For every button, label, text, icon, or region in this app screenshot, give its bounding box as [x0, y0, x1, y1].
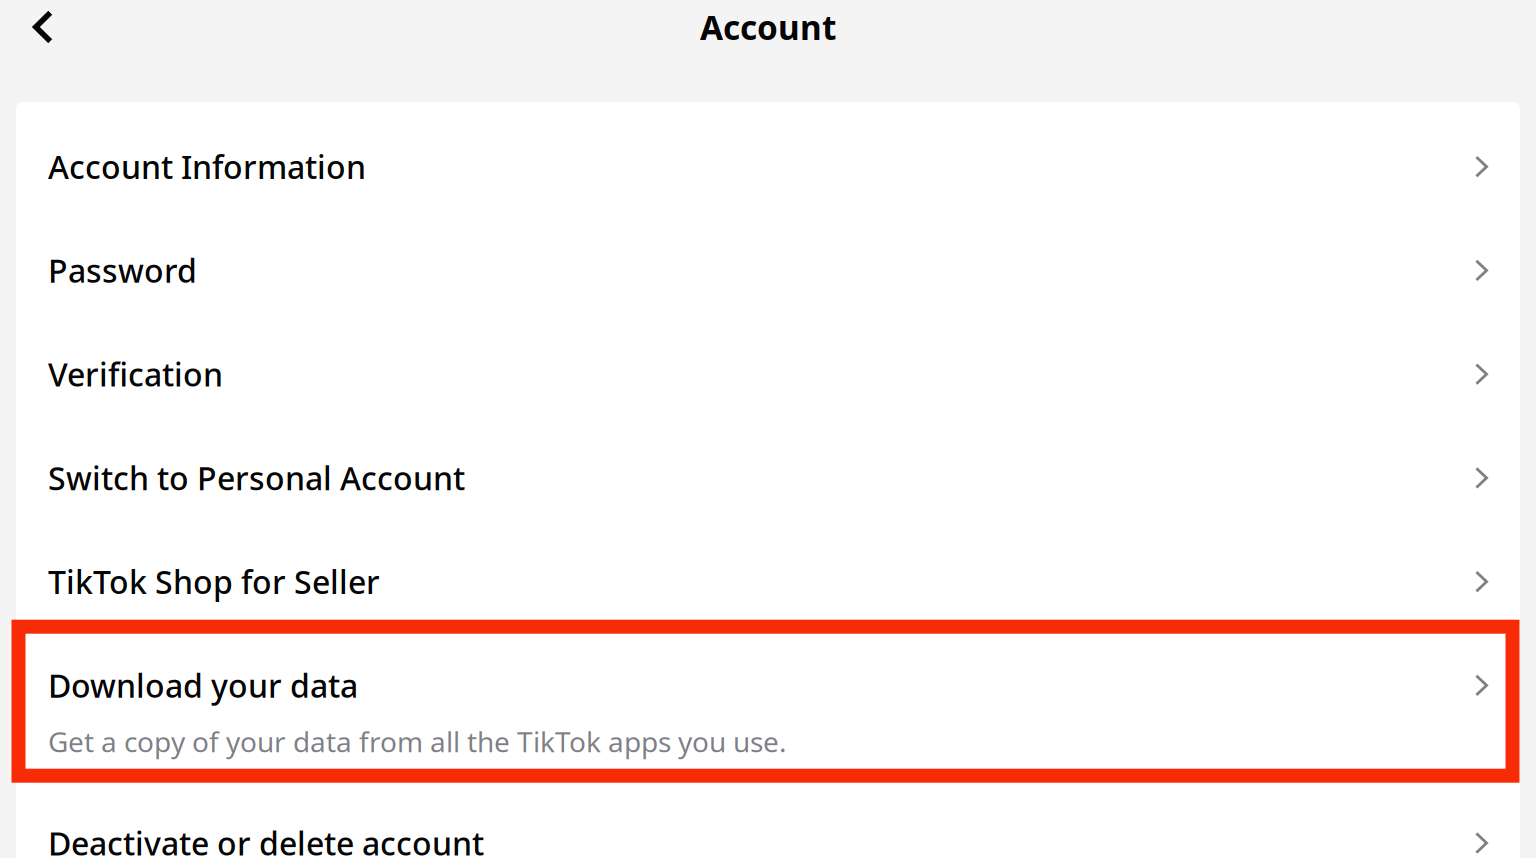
staticText: Password: [48, 249, 197, 292]
staticText: Download your data: [48, 664, 358, 707]
button[interactable]: Password: [16, 219, 1520, 322]
staticText: Account Information: [48, 145, 366, 188]
staticText: Account: [700, 5, 836, 49]
staticText: Deactivate or delete account: [48, 822, 484, 858]
staticText: Get a copy of your data from all the Tik…: [48, 723, 787, 760]
button[interactable]: Deactivate or delete account: [16, 791, 1520, 858]
button[interactable]: Back: [0, 0, 75, 54]
staticText: TikTok Shop for Seller: [48, 560, 380, 603]
button[interactable]: TikTok Shop for Seller: [16, 530, 1520, 634]
staticText: Verification: [48, 353, 223, 395]
button[interactable]: Account Information: [16, 115, 1520, 219]
staticText: Switch to Personal Account: [48, 457, 465, 499]
button[interactable]: Switch to Personal Account: [16, 426, 1520, 530]
button[interactable]: Verification: [16, 322, 1520, 426]
button[interactable]: Download your data: [16, 633, 1520, 791]
